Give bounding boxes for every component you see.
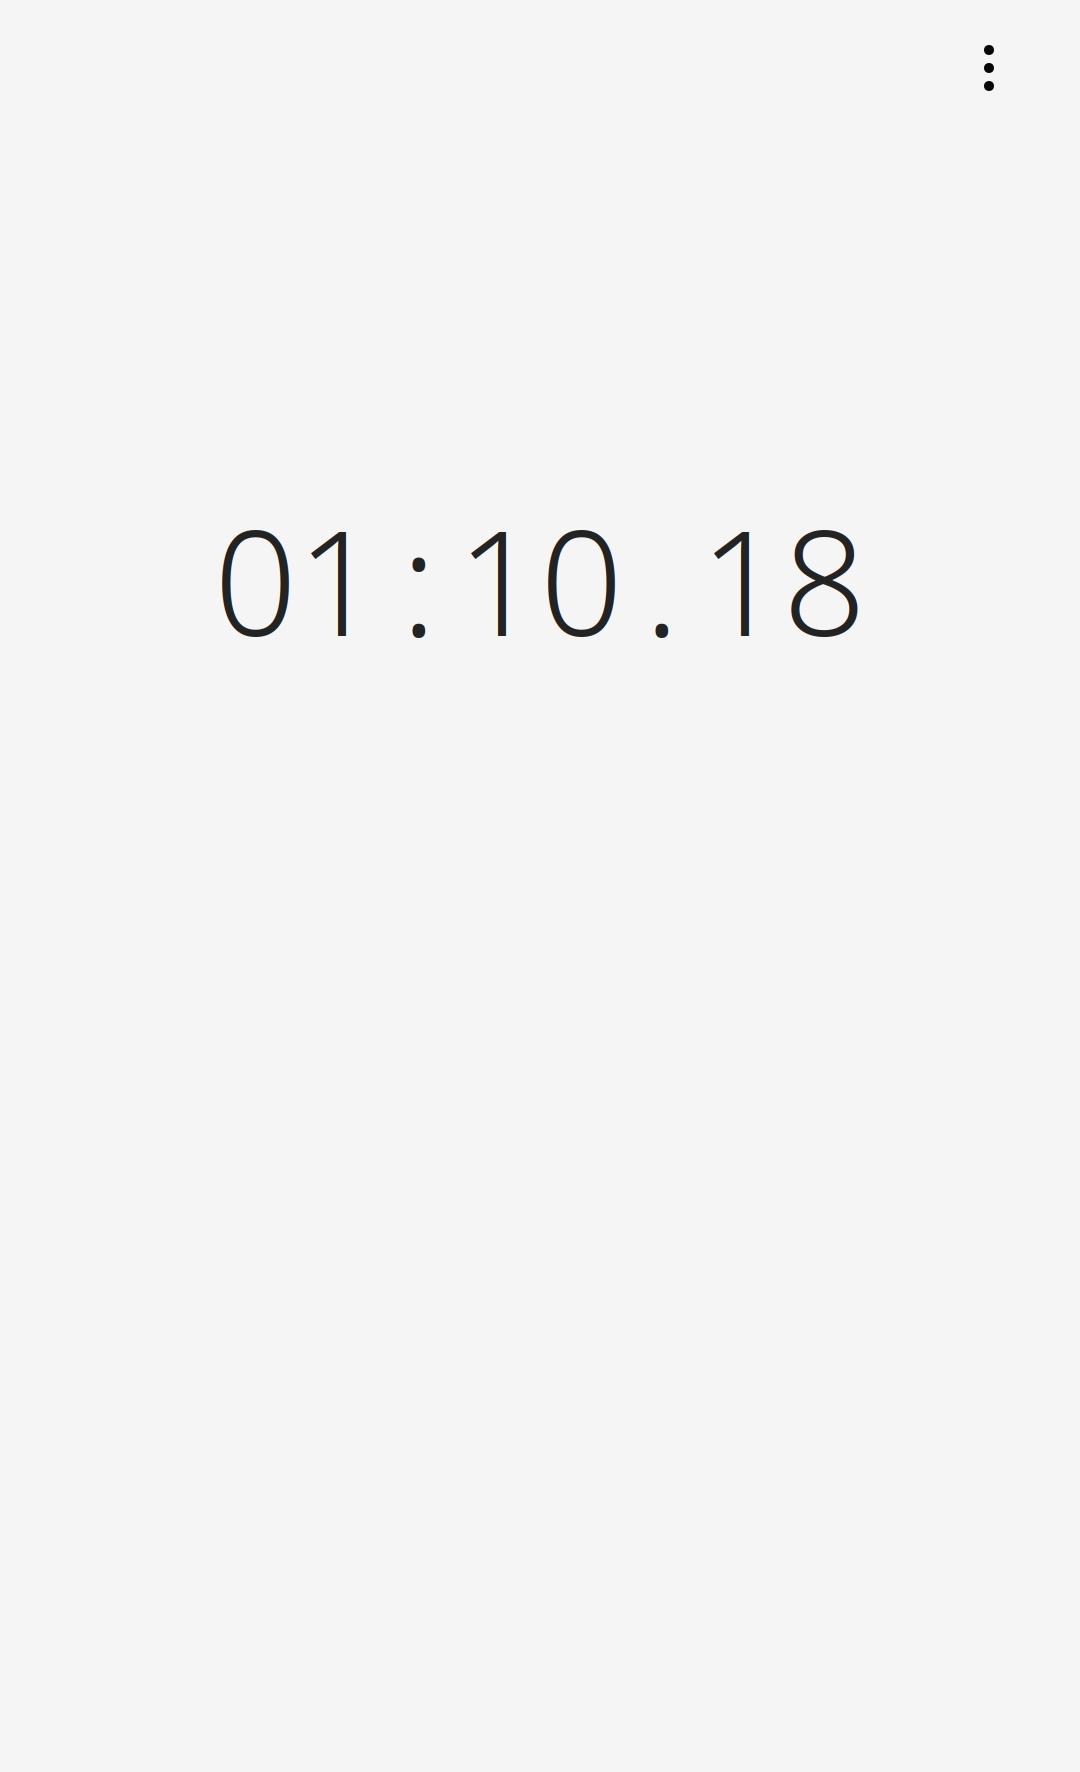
staticText: 10: [457, 483, 623, 676]
staticText: .: [644, 483, 679, 676]
staticText: 18: [700, 483, 866, 676]
staticText: 01: [214, 483, 380, 676]
staticText: :: [401, 483, 436, 676]
button[interactable]: More options: [934, 13, 1044, 123]
